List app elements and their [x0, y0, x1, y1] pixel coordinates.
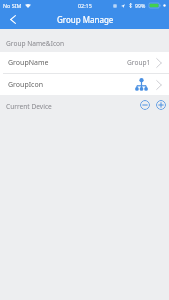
button[interactable]: Remove device [140, 100, 150, 110]
staticText: No SIM [3, 2, 22, 9]
button[interactable]: GroupIcon [0, 74, 169, 95]
staticText: 99% [135, 2, 146, 9]
button[interactable]: Add device [156, 100, 166, 110]
staticText: Current Device [6, 102, 52, 111]
staticText: 02:15 [78, 2, 92, 9]
staticText: Group Name&Icon [6, 39, 65, 48]
staticText: Group1 [127, 58, 151, 67]
button[interactable]: Back [0, 9, 26, 29]
button[interactable]: GroupName [0, 52, 169, 73]
staticText: Group Manage [57, 14, 114, 25]
staticText: GroupIcon [8, 80, 44, 90]
staticText: GroupName [8, 58, 49, 68]
